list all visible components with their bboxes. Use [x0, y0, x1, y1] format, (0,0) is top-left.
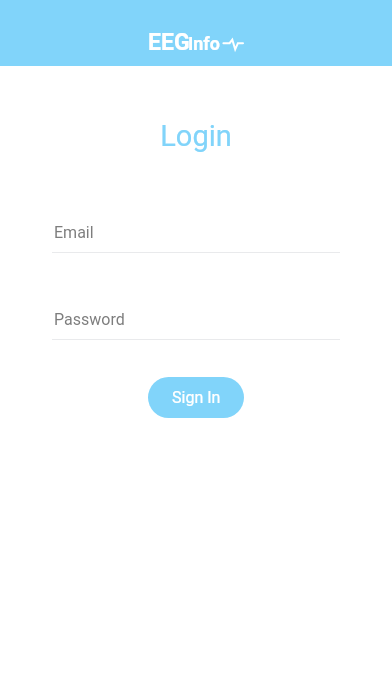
staticText: Password [54, 310, 125, 329]
button[interactable]: Sign In [148, 377, 244, 418]
button[interactable]: Password [52, 310, 340, 340]
staticText: EEG [148, 29, 190, 56]
button[interactable]: Email [52, 223, 340, 253]
staticText: Sign In [172, 388, 221, 407]
staticText: Login [0, 119, 392, 153]
other: EEGInfo [0, 0, 392, 66]
staticText: Info [188, 33, 220, 54]
staticText: Email [54, 223, 94, 242]
